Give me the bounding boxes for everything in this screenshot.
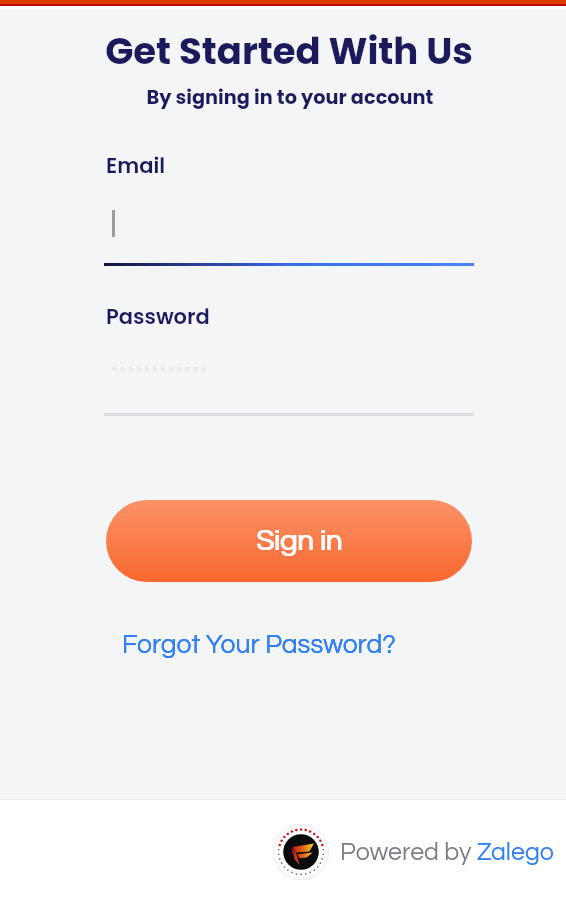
staticText: Zalego	[477, 839, 554, 865]
button[interactable]: Forgot Your Password?	[122, 622, 396, 666]
staticText: Email	[106, 151, 166, 180]
staticText: Powered by	[340, 839, 477, 865]
button[interactable]: Zalego Academy logo	[273, 824, 554, 880]
staticText: Sign in	[256, 526, 342, 556]
staticText: Forgot Your Password?	[122, 631, 396, 658]
button[interactable]: Sign in	[106, 500, 472, 582]
other: Zalego Academy logo	[273, 824, 329, 880]
button[interactable]: Email input field	[104, 190, 474, 266]
staticText: By signing in to your account	[7, 84, 566, 111]
staticText: Password	[106, 302, 210, 331]
staticText: Get Started With Us	[6, 25, 566, 77]
staticText: Forgot Your Password?	[122, 631, 396, 658]
button[interactable]: Password input field	[104, 340, 474, 416]
staticText: Sign in	[257, 526, 343, 556]
